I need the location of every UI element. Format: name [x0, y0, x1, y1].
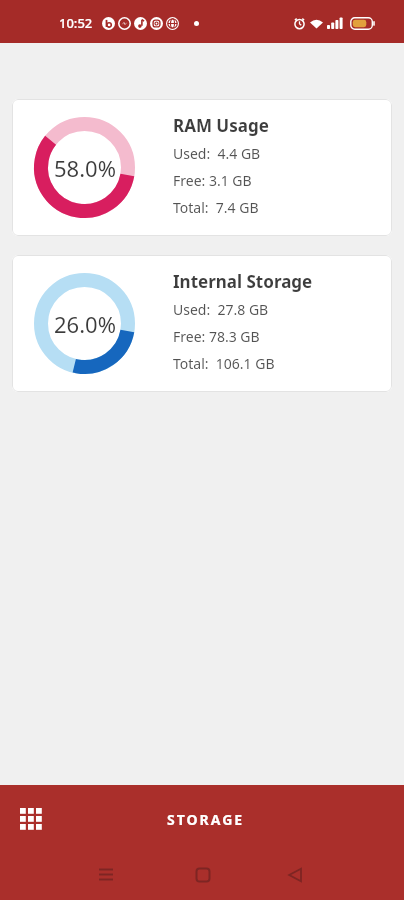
- staticText: RAM Usage: [173, 114, 269, 137]
- staticText: Free: 3.1 GB: [173, 171, 252, 190]
- button[interactable]: [9, 797, 53, 841]
- button[interactable]: [92, 861, 120, 889]
- staticText: Used: 27.8 GB: [173, 300, 269, 319]
- button[interactable]: [281, 861, 309, 889]
- staticText: Total: 7.4 GB: [173, 198, 259, 217]
- staticText: 26.0%: [54, 309, 116, 339]
- staticText: Internal Storage: [173, 270, 313, 293]
- staticText: 10:52: [59, 14, 93, 32]
- staticText: Used: 4.4 GB: [173, 144, 261, 163]
- staticText: Total: 106.1 GB: [173, 354, 275, 373]
- button[interactable]: 58.0%: [12, 99, 392, 236]
- button[interactable]: 26.0%: [12, 255, 392, 392]
- staticText: 58.0%: [54, 153, 116, 183]
- button[interactable]: [189, 861, 217, 889]
- staticText: STORAGE: [167, 810, 245, 829]
- staticText: Free: 78.3 GB: [173, 327, 260, 346]
